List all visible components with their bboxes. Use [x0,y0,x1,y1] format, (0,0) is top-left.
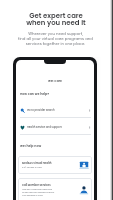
button[interactable]: Health service and support [16,120,94,134]
staticText: 24/7 access to care [22,166,42,169]
staticText: MedSAS Virtual Health [22,161,52,165]
other: Open [88,109,91,112]
staticText: Get help now [20,144,42,148]
staticText: Get expert care when you need it [26,11,86,28]
staticText: Go to provider search [27,108,55,112]
staticText: Get Care [48,79,62,83]
staticText: How can we help? [20,92,49,96]
staticText: Health service and support [27,125,62,129]
staticText: Call Member Services [22,183,51,187]
staticText: Talk with a member advocate to get help … [22,188,55,197]
other: Open [88,126,91,129]
button[interactable]: Go to provider search [16,103,94,117]
button[interactable]: MedSAS Virtual Health [18,156,92,174]
button[interactable]: Get Care [16,60,94,87]
staticText: Wherever you need support, find all your… [18,31,93,46]
button[interactable]: Call Member Services [18,178,92,200]
